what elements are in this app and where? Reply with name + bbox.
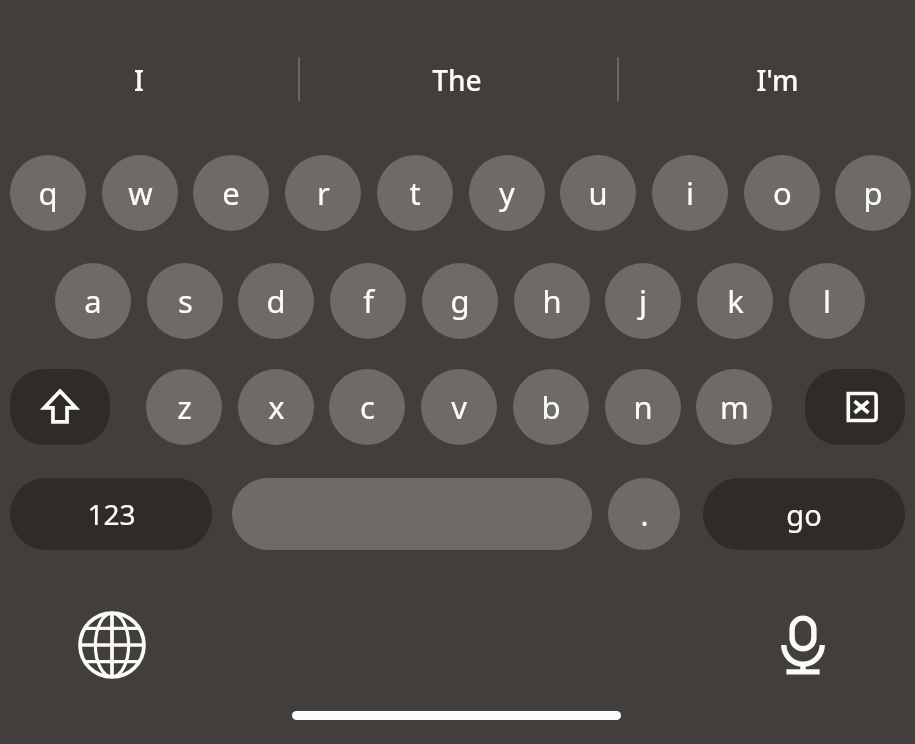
button[interactable]: o	[744, 155, 820, 231]
staticText: b	[541, 386, 561, 428]
staticText: z	[177, 386, 192, 428]
staticText: .	[640, 494, 649, 535]
staticText: 123	[87, 495, 136, 533]
button[interactable]: d	[238, 263, 314, 339]
staticText: x	[268, 386, 285, 428]
button[interactable]: k	[697, 263, 773, 339]
button[interactable]: n	[605, 369, 681, 445]
staticText: n	[633, 386, 653, 428]
staticText: m	[720, 386, 749, 428]
staticText: I'm	[756, 61, 799, 99]
button[interactable]: m	[696, 369, 772, 445]
button[interactable]: I'm	[687, 52, 867, 108]
button[interactable]: j	[605, 263, 681, 339]
button[interactable]	[232, 478, 592, 550]
staticText: u	[588, 172, 608, 214]
staticText: o	[773, 172, 792, 214]
staticText: go	[786, 495, 822, 534]
staticText: c	[360, 386, 375, 428]
staticText: s	[178, 280, 193, 322]
button[interactable]: I	[49, 52, 229, 108]
staticText: d	[266, 280, 286, 322]
staticText: e	[222, 172, 240, 214]
staticText: i	[686, 172, 694, 214]
staticText: y	[499, 172, 515, 214]
button[interactable]: Voice input	[763, 605, 843, 685]
button[interactable]: Backspace	[805, 369, 905, 445]
button[interactable]: x	[238, 369, 314, 445]
button[interactable]: t	[377, 155, 453, 231]
button[interactable]: z	[146, 369, 222, 445]
button[interactable]: b	[513, 369, 589, 445]
button[interactable]: Change keyboard language	[72, 605, 152, 685]
button[interactable]: g	[422, 263, 498, 339]
staticText: t	[409, 172, 421, 214]
button[interactable]: h	[514, 263, 590, 339]
staticText: p	[863, 172, 883, 214]
button[interactable]: i	[652, 155, 728, 231]
staticText: r	[317, 172, 330, 214]
staticText: v	[451, 386, 467, 428]
button[interactable]: u	[560, 155, 636, 231]
button[interactable]: go	[703, 478, 905, 550]
staticText: I	[134, 61, 144, 99]
button[interactable]: a	[55, 263, 131, 339]
staticText: f	[363, 280, 374, 322]
staticText: w	[128, 172, 153, 214]
button[interactable]: y	[469, 155, 545, 231]
button[interactable]: c	[329, 369, 405, 445]
staticText: g	[450, 280, 470, 322]
staticText: q	[38, 172, 58, 214]
staticText: l	[823, 280, 831, 322]
staticText: k	[727, 280, 744, 322]
staticText: The	[432, 61, 482, 99]
button[interactable]: 123	[10, 478, 212, 550]
button[interactable]: .	[608, 478, 680, 550]
button[interactable]: f	[330, 263, 406, 339]
staticText: j	[639, 280, 647, 322]
staticText: h	[542, 280, 562, 322]
button[interactable]: q	[10, 155, 86, 231]
button[interactable]: w	[102, 155, 178, 231]
button[interactable]: s	[147, 263, 223, 339]
button[interactable]: l	[789, 263, 865, 339]
staticText: a	[84, 280, 102, 322]
button[interactable]: e	[193, 155, 269, 231]
button[interactable]: p	[835, 155, 911, 231]
button[interactable]: r	[285, 155, 361, 231]
button[interactable]: v	[421, 369, 497, 445]
button[interactable]: The	[367, 52, 547, 108]
button[interactable]: Shift	[10, 369, 110, 445]
